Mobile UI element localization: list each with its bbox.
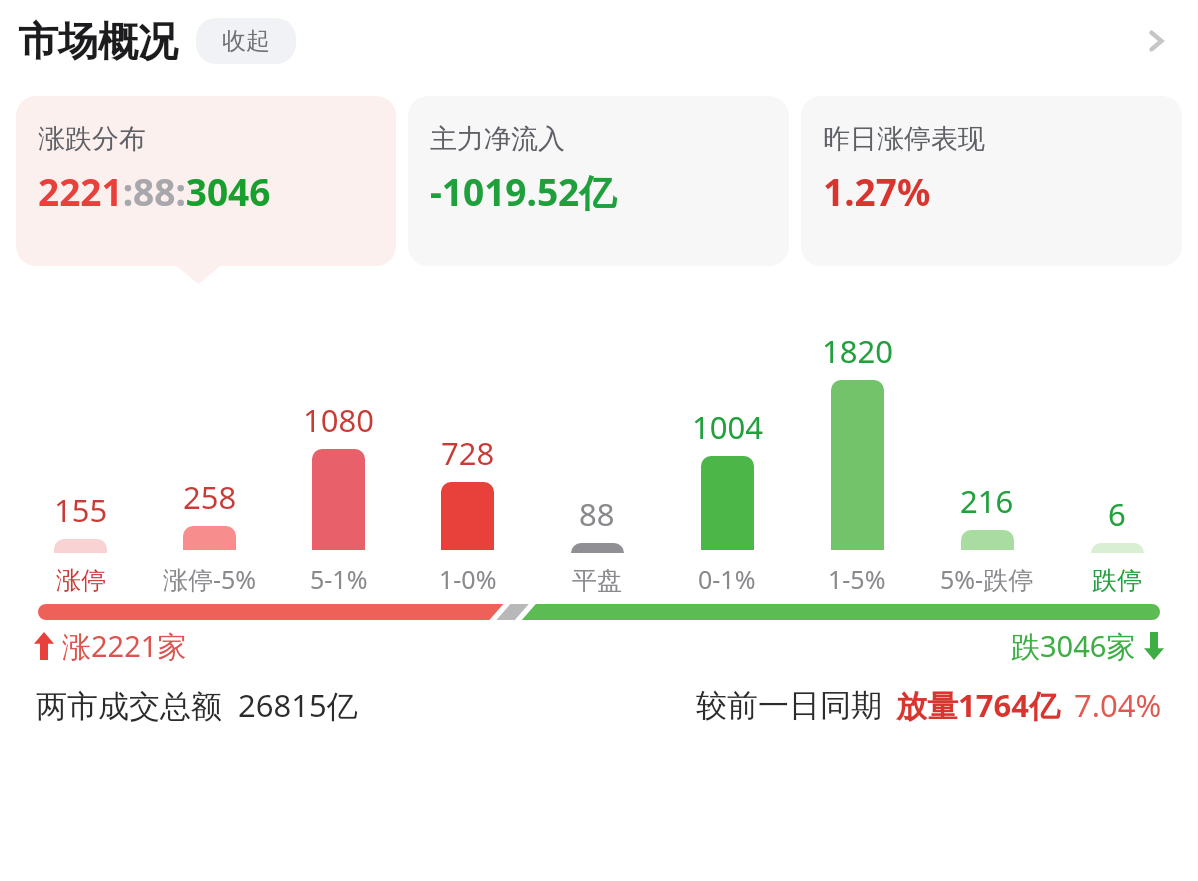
staticText: 1-5% — [828, 562, 886, 596]
staticText: 1820 — [822, 330, 893, 372]
staticText: 5%-跌停 — [940, 562, 1034, 596]
staticText: 2221:88:3046 — [38, 166, 271, 216]
button[interactable]: 88 — [532, 296, 662, 596]
staticText: 主力净流入 — [430, 122, 565, 156]
staticText: 涨停 — [56, 565, 106, 596]
button[interactable]: 昨日涨停表现 — [801, 96, 1182, 266]
staticText: 0-1% — [698, 562, 756, 596]
button[interactable]: 涨跌分布 — [16, 96, 396, 266]
staticText: 7.04% — [1074, 684, 1162, 726]
staticText: 1.27% — [823, 166, 931, 216]
staticText: 涨停-5% — [163, 562, 257, 596]
staticText: 涨2221家 — [62, 626, 187, 666]
staticText: 涨跌分布 — [38, 122, 146, 156]
button[interactable]: 216 — [922, 296, 1052, 596]
staticText: 1-0% — [439, 562, 497, 596]
staticText: 昨日涨停表现 — [823, 122, 985, 156]
staticText: 跌停 — [1092, 565, 1142, 596]
button[interactable]: 主力净流入 — [408, 96, 789, 266]
button[interactable]: 1820 — [792, 296, 922, 596]
staticText: 728 — [441, 432, 495, 474]
staticText: 216 — [960, 480, 1014, 522]
button[interactable]: 258 — [145, 296, 274, 596]
staticText: 1004 — [692, 406, 763, 448]
staticText: 两市成交总额 26815亿 — [36, 684, 358, 726]
staticText: 市场概况 — [18, 16, 178, 66]
button[interactable]: 155 — [16, 296, 145, 596]
button[interactable]: 1004 — [662, 296, 792, 596]
staticText: 155 — [54, 489, 108, 531]
staticText: 5-1% — [310, 562, 368, 596]
staticText: 平盘 — [572, 565, 622, 596]
staticText: -1019.52亿 — [430, 166, 617, 217]
staticText: 1080 — [303, 399, 374, 441]
button[interactable]: 收起 — [196, 18, 296, 64]
staticText: 跌3046家 — [1011, 626, 1136, 666]
button[interactable]: 1080 — [274, 296, 403, 596]
staticText: 较前一日同期 — [696, 686, 882, 725]
staticText: 放量1764亿 — [896, 684, 1060, 726]
staticText: 6 — [1108, 493, 1126, 535]
button[interactable]: 728 — [403, 296, 532, 596]
staticText: 88 — [579, 493, 615, 535]
staticText: 收起 — [222, 26, 270, 56]
button[interactable]: 更多 — [1128, 13, 1184, 69]
staticText: 258 — [183, 476, 237, 518]
button[interactable]: 6 — [1052, 296, 1182, 596]
